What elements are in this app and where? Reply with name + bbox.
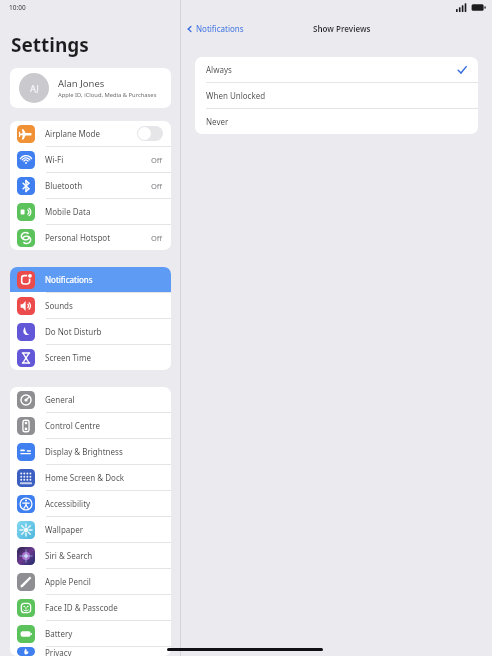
staticText: Bluetooth bbox=[45, 180, 83, 191]
button[interactable]: Notifications bbox=[10, 267, 171, 292]
staticText: Do Not Disturb bbox=[45, 326, 102, 337]
staticText: Airplane Mode bbox=[45, 128, 101, 139]
staticText: Privacy bbox=[45, 647, 72, 656]
staticText: Apple Pencil bbox=[45, 576, 91, 587]
button[interactable]: Wallpaper bbox=[10, 517, 171, 542]
button[interactable]: Mobile Data bbox=[10, 199, 171, 224]
staticText: Apple ID, iCloud, Media & Purchases bbox=[58, 91, 157, 99]
button[interactable]: Airplane Mode toggle bbox=[137, 126, 163, 141]
staticText: Off bbox=[151, 233, 163, 243]
staticText: Wallpaper bbox=[45, 524, 84, 535]
button[interactable]: Apple Pencil bbox=[10, 569, 171, 594]
button[interactable]: Airplane Mode bbox=[10, 121, 171, 146]
staticText: Display & Brightness bbox=[45, 446, 123, 457]
staticText: Off bbox=[151, 155, 163, 165]
staticText: Sounds bbox=[45, 300, 73, 311]
staticText: Battery bbox=[45, 628, 73, 639]
button[interactable]: Personal Hotspot bbox=[10, 225, 171, 250]
button[interactable]: Battery bbox=[10, 621, 171, 646]
button[interactable]: Home Screen & Dock bbox=[10, 465, 171, 490]
staticText: Notifications bbox=[196, 23, 244, 34]
staticText: AJ bbox=[30, 82, 39, 94]
button[interactable]: Never bbox=[195, 109, 478, 134]
staticText: Screen Time bbox=[45, 352, 91, 363]
staticText: Notifications bbox=[45, 274, 93, 285]
button[interactable]: AJ bbox=[10, 68, 171, 108]
staticText: When Unlocked bbox=[206, 90, 266, 101]
button[interactable]: Screen Time bbox=[10, 345, 171, 370]
button[interactable]: Wi-Fi bbox=[10, 147, 171, 172]
staticText: Settings bbox=[11, 32, 89, 58]
staticText: Accessibility bbox=[45, 498, 91, 509]
button[interactable]: General bbox=[10, 387, 171, 412]
button[interactable]: When Unlocked bbox=[195, 83, 478, 108]
staticText: General bbox=[45, 394, 75, 405]
button[interactable]: Do Not Disturb bbox=[10, 319, 171, 344]
staticText: Siri & Search bbox=[45, 550, 93, 561]
button[interactable]: Bluetooth bbox=[10, 173, 171, 198]
button[interactable]: Face ID & Passcode bbox=[10, 595, 171, 620]
staticText: Mobile Data bbox=[45, 206, 91, 217]
button[interactable]: Always bbox=[195, 57, 478, 82]
button[interactable]: Sounds bbox=[10, 293, 171, 318]
button[interactable]: Siri & Search bbox=[10, 543, 171, 568]
staticText: Alan Jones bbox=[58, 77, 105, 90]
staticText: 10:00 bbox=[9, 3, 26, 12]
staticText: Control Centre bbox=[45, 420, 100, 431]
button[interactable]: Accessibility bbox=[10, 491, 171, 516]
staticText: Personal Hotspot bbox=[45, 232, 111, 243]
staticText: Face ID & Passcode bbox=[45, 602, 118, 613]
staticText: Wi-Fi bbox=[45, 154, 64, 165]
button[interactable]: Notifications bbox=[186, 23, 244, 34]
staticText: Off bbox=[151, 181, 163, 191]
staticText: Always bbox=[206, 64, 232, 75]
button[interactable]: Display & Brightness bbox=[10, 439, 171, 464]
staticText: Show Previews bbox=[313, 23, 371, 34]
button[interactable]: Privacy bbox=[10, 647, 171, 656]
staticText: Never bbox=[206, 116, 229, 127]
staticText: Home Screen & Dock bbox=[45, 472, 124, 483]
button[interactable]: Control Centre bbox=[10, 413, 171, 438]
